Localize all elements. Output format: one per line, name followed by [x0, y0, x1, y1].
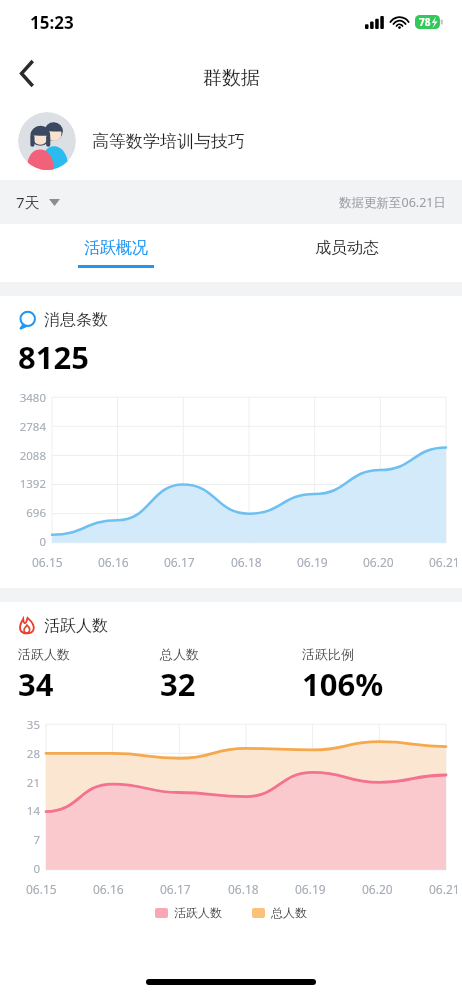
- staticText: 活跃比例: [302, 646, 354, 662]
- staticText: 78: [419, 15, 431, 29]
- staticText: 0: [33, 861, 40, 877]
- staticText: 7: [33, 832, 40, 848]
- staticText: 2088: [19, 448, 46, 464]
- staticText: 06.17: [164, 554, 195, 570]
- button[interactable]: 活跃概况: [0, 224, 231, 282]
- staticText: 06.18: [231, 554, 262, 570]
- staticText: 06.19: [295, 881, 326, 897]
- staticText: 06.16: [98, 554, 129, 570]
- staticText: 06.21: [429, 554, 460, 570]
- staticText: 消息条数: [44, 310, 108, 330]
- staticText: 总人数: [160, 646, 199, 662]
- staticText: 成员动态: [315, 238, 379, 258]
- staticText: 21: [26, 775, 40, 791]
- button[interactable]: 7天: [0, 192, 72, 212]
- staticText: 106%: [302, 663, 384, 705]
- staticText: 0: [39, 534, 46, 550]
- staticText: 14: [26, 803, 40, 819]
- staticText: 总人数: [271, 905, 307, 920]
- button[interactable]: 高等数学培训与技巧: [0, 102, 462, 180]
- staticText: 活跃人数: [18, 646, 70, 662]
- staticText: 15:23: [30, 11, 74, 34]
- staticText: 活跃人数: [174, 905, 222, 920]
- button[interactable]: 总人数: [252, 905, 307, 920]
- staticText: 1392: [19, 476, 46, 492]
- staticText: 8125: [18, 336, 89, 378]
- staticText: 06.21: [429, 881, 460, 897]
- staticText: 活跃人数: [44, 616, 108, 636]
- staticText: 06.15: [26, 881, 57, 897]
- button[interactable]: 成员动态: [231, 224, 462, 282]
- staticText: 群数据: [203, 66, 260, 90]
- staticText: 34: [18, 663, 54, 705]
- button[interactable]: Back: [0, 46, 54, 100]
- staticText: 06.20: [362, 881, 393, 897]
- staticText: 2784: [19, 419, 46, 435]
- staticText: 696: [26, 505, 46, 521]
- staticText: 06.15: [32, 554, 63, 570]
- staticText: 7天: [16, 192, 40, 212]
- staticText: 28: [26, 746, 40, 762]
- staticText: 06.20: [363, 554, 394, 570]
- staticText: 高等数学培训与技巧: [92, 131, 245, 152]
- staticText: 06.16: [93, 881, 124, 897]
- staticText: 3480: [19, 390, 46, 406]
- staticText: 数据更新至06.21日: [339, 194, 446, 211]
- button[interactable]: 活跃人数: [155, 905, 222, 920]
- staticText: 32: [160, 663, 196, 705]
- staticText: 06.18: [228, 881, 259, 897]
- staticText: 35: [26, 717, 40, 733]
- staticText: 06.17: [160, 881, 191, 897]
- staticText: 活跃概况: [84, 238, 148, 258]
- staticText: 06.19: [297, 554, 328, 570]
